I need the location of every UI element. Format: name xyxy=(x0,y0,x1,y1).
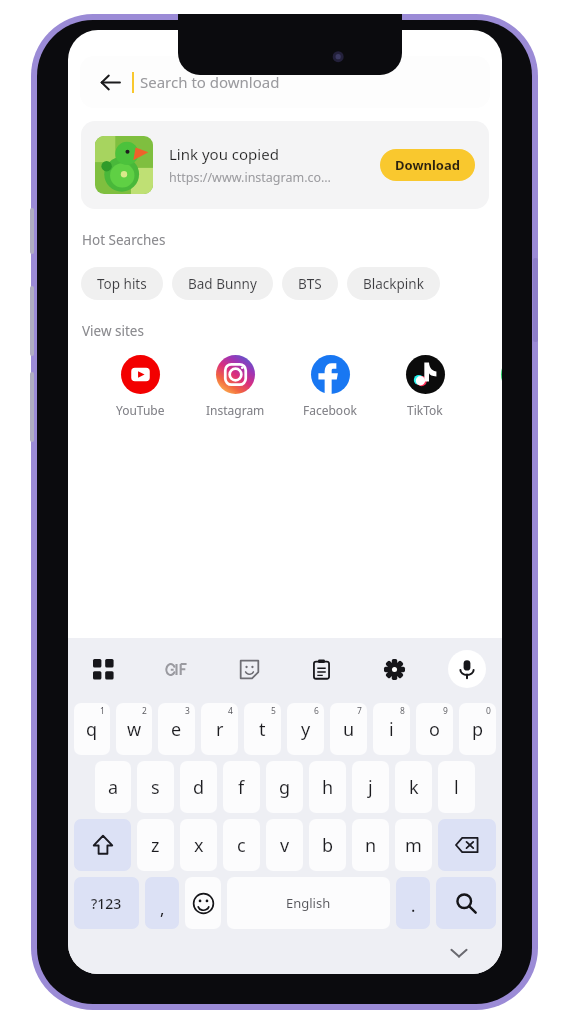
button[interactable]: Apps xyxy=(84,650,122,688)
staticText: View sites xyxy=(82,322,144,340)
staticText: Top hits xyxy=(97,275,147,293)
staticText: Instagram xyxy=(206,402,265,418)
button[interactable]: Back xyxy=(90,62,130,102)
button[interactable]: y xyxy=(287,703,324,755)
staticText: 6 xyxy=(314,705,319,717)
button[interactable]: w xyxy=(116,703,152,755)
button[interactable]: Bad Bunny xyxy=(172,267,273,300)
staticText: 1 xyxy=(100,705,105,717)
staticText: English xyxy=(286,894,331,912)
staticText: k xyxy=(409,775,419,800)
button[interactable]: Stickers xyxy=(230,650,268,688)
button[interactable]: a xyxy=(95,761,131,813)
button[interactable]: Shift xyxy=(74,819,131,871)
staticText: Hot Searches xyxy=(82,231,166,249)
staticText: 8 xyxy=(400,705,405,717)
button[interactable]: q xyxy=(74,703,110,755)
staticText: . xyxy=(411,895,416,917)
button[interactable]: p xyxy=(459,703,496,755)
staticText: , xyxy=(160,898,165,920)
button[interactable]: e xyxy=(158,703,195,755)
staticText: Search to download xyxy=(140,72,280,92)
staticText: v xyxy=(280,833,290,858)
button[interactable]: Blackpink xyxy=(347,267,440,300)
staticText: ?123 xyxy=(91,894,122,913)
button[interactable]: Link you copied xyxy=(81,121,489,209)
staticText: Facebook xyxy=(303,402,357,418)
staticText: u xyxy=(343,717,355,742)
button[interactable]: Settings xyxy=(375,650,413,688)
button[interactable]: Search xyxy=(436,877,496,929)
button[interactable]: Hide keyboard xyxy=(442,936,476,970)
staticText: f xyxy=(238,775,245,800)
staticText: q xyxy=(86,717,98,742)
staticText: 2 xyxy=(142,705,147,717)
button[interactable]: Instagram xyxy=(199,355,271,418)
button[interactable]: English xyxy=(227,877,390,929)
staticText: m xyxy=(405,833,422,858)
button[interactable]: n xyxy=(352,819,389,871)
staticText: BTS xyxy=(298,275,322,293)
staticText: Blackpink xyxy=(363,275,424,293)
button[interactable]: c xyxy=(223,819,260,871)
button[interactable]: TikTok xyxy=(389,355,461,418)
staticText: j xyxy=(368,775,373,800)
button[interactable]: Back xyxy=(80,56,490,108)
staticText: Bad Bunny xyxy=(188,275,257,293)
button[interactable]: Status xyxy=(484,355,502,418)
staticText: r xyxy=(216,717,224,742)
button[interactable]: GIF xyxy=(157,650,195,688)
staticText: 3 xyxy=(185,705,190,717)
button[interactable]: Download xyxy=(380,149,475,181)
button[interactable]: x xyxy=(180,819,217,871)
staticText: 0 xyxy=(486,705,491,717)
staticText: s xyxy=(151,775,160,800)
staticText: y xyxy=(301,717,311,742)
staticText: o xyxy=(429,717,440,742)
button[interactable]: Facebook xyxy=(294,355,366,418)
staticText: w xyxy=(127,717,142,742)
button[interactable]: v xyxy=(266,819,303,871)
staticText: YouTube xyxy=(116,402,165,418)
button[interactable]: Backspace xyxy=(438,819,496,871)
staticText: c xyxy=(237,833,246,858)
button[interactable]: j xyxy=(352,761,389,813)
button[interactable]: o xyxy=(416,703,453,755)
staticText: g xyxy=(279,775,291,800)
button[interactable]: t xyxy=(244,703,281,755)
button[interactable]: ?123 xyxy=(74,877,139,929)
staticText: b xyxy=(322,833,334,858)
button[interactable]: r xyxy=(201,703,238,755)
button[interactable]: BTS xyxy=(282,267,338,300)
button[interactable]: g xyxy=(266,761,303,813)
staticText: https://www.instagram.co… xyxy=(169,169,331,186)
button[interactable]: f xyxy=(223,761,260,813)
staticText: 7 xyxy=(357,705,362,717)
button[interactable]: l xyxy=(438,761,475,813)
staticText: l xyxy=(454,775,459,800)
button[interactable]: u xyxy=(330,703,367,755)
button[interactable]: Clipboard xyxy=(302,650,340,688)
button[interactable]: Emoji xyxy=(185,877,221,929)
button[interactable]: i xyxy=(373,703,410,755)
button[interactable]: s xyxy=(137,761,174,813)
button[interactable]: YouTube xyxy=(104,355,176,418)
staticText: z xyxy=(151,833,160,858)
staticText: 9 xyxy=(443,705,448,717)
button[interactable]: b xyxy=(309,819,346,871)
button[interactable]: m xyxy=(395,819,432,871)
staticText: e xyxy=(171,717,182,742)
button[interactable]: z xyxy=(137,819,174,871)
button[interactable]: , xyxy=(145,877,179,929)
staticText: 4 xyxy=(228,705,233,717)
staticText: n xyxy=(365,833,377,858)
staticText: p xyxy=(472,717,484,742)
button[interactable]: Top hits xyxy=(81,267,163,300)
staticText: i xyxy=(389,717,394,742)
staticText: Download xyxy=(395,156,460,174)
button[interactable]: . xyxy=(396,877,430,929)
button[interactable]: h xyxy=(309,761,346,813)
button[interactable]: d xyxy=(180,761,217,813)
button[interactable]: Voice input xyxy=(448,650,486,688)
button[interactable]: k xyxy=(395,761,432,813)
